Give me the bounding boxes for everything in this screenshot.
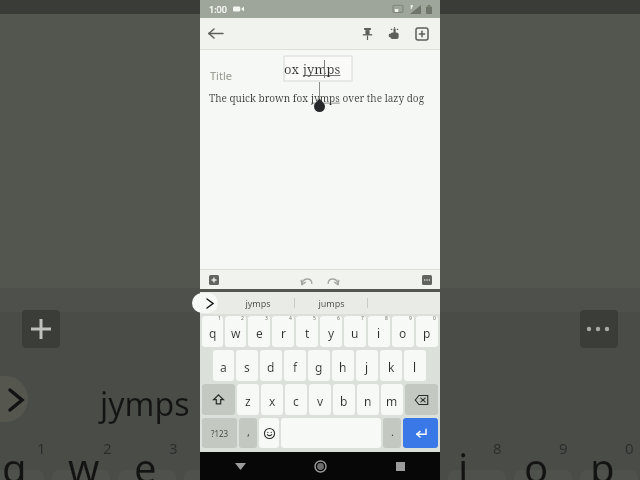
button[interactable]: r xyxy=(272,316,294,347)
button[interactable]: b xyxy=(333,384,355,415)
button[interactable]: Undo xyxy=(298,271,316,289)
button[interactable]: j xyxy=(356,350,378,381)
staticText: 7 xyxy=(361,316,364,322)
button[interactable]: l xyxy=(404,350,426,381)
button[interactable]: jumps xyxy=(295,292,367,314)
staticText: t xyxy=(305,325,310,341)
button[interactable]: More options xyxy=(420,273,433,286)
staticText: m xyxy=(386,393,398,409)
staticText: 8 xyxy=(493,438,502,458)
staticText: h xyxy=(339,359,347,375)
staticText: r xyxy=(281,325,286,341)
button[interactable]: z xyxy=(237,384,259,415)
staticText: ov xyxy=(341,56,352,81)
button[interactable]: Remind me xyxy=(381,20,408,47)
staticText: i xyxy=(458,440,469,480)
staticText: y xyxy=(328,325,335,341)
button[interactable]: x xyxy=(261,384,283,415)
staticText: jymps xyxy=(311,91,340,105)
staticText: . xyxy=(391,424,394,439)
staticText: 3 xyxy=(265,316,268,322)
button[interactable]: c xyxy=(285,384,307,415)
button[interactable]: t xyxy=(296,316,318,347)
staticText: i xyxy=(377,325,381,341)
button[interactable]: Add item xyxy=(207,273,220,286)
staticText: , xyxy=(247,424,250,439)
staticText: j xyxy=(365,359,369,375)
staticText: jymps xyxy=(100,382,190,426)
button[interactable]: Period xyxy=(383,418,401,448)
staticText: jymps xyxy=(303,60,341,78)
button[interactable]: y xyxy=(320,316,342,347)
staticText: f xyxy=(293,359,298,375)
button[interactable]: q xyxy=(202,316,223,347)
staticText: e xyxy=(256,325,263,341)
button[interactable]: k xyxy=(380,350,402,381)
button[interactable]: h xyxy=(332,350,354,381)
staticText: ?123 xyxy=(211,428,229,439)
staticText: l xyxy=(413,359,417,375)
button[interactable]: w xyxy=(225,316,246,347)
staticText: s xyxy=(244,359,250,375)
staticText: 1 xyxy=(37,438,46,458)
button[interactable]: Shift xyxy=(202,384,235,415)
button[interactable]: v xyxy=(309,384,331,415)
button[interactable]: m xyxy=(381,384,403,415)
staticText: d xyxy=(267,359,275,375)
button[interactable]: u xyxy=(344,316,366,347)
button[interactable]: Recent apps xyxy=(360,452,440,480)
button[interactable]: More suggestions xyxy=(192,293,218,313)
staticText: q xyxy=(209,325,217,341)
staticText: 0 xyxy=(625,438,634,458)
button[interactable]: Emoji xyxy=(259,418,279,448)
button[interactable]: f xyxy=(284,350,306,381)
staticText: 0 xyxy=(433,316,436,322)
staticText: 6 xyxy=(337,316,340,322)
staticText: o xyxy=(524,440,549,480)
button[interactable]: i xyxy=(368,316,390,347)
button[interactable]: Redo xyxy=(324,271,342,289)
button[interactable]: e xyxy=(248,316,270,347)
staticText: 1:00 xyxy=(209,3,227,15)
button[interactable]: Enter xyxy=(403,418,438,448)
staticText: c xyxy=(293,393,299,409)
staticText: n xyxy=(364,393,372,409)
staticText: b xyxy=(340,393,348,409)
button[interactable]: Symbols xyxy=(202,418,237,448)
button[interactable]: Back xyxy=(200,18,231,49)
staticText: k xyxy=(388,359,395,375)
button[interactable]: Comma xyxy=(239,418,257,448)
button[interactable]: Pin note xyxy=(354,20,381,47)
staticText: p xyxy=(423,325,431,341)
staticText: x xyxy=(269,393,276,409)
button[interactable]: Hide keyboard xyxy=(200,452,280,480)
staticText: 1 xyxy=(218,316,221,322)
staticText: 9 xyxy=(409,316,412,322)
staticText: ox xyxy=(284,60,303,78)
staticText: w xyxy=(68,440,100,480)
staticText: 2 xyxy=(241,316,244,322)
button[interactable]: p xyxy=(416,316,438,347)
button[interactable]: Home xyxy=(280,452,360,480)
staticText: a xyxy=(220,359,227,375)
button[interactable]: o xyxy=(392,316,414,347)
button[interactable]: n xyxy=(357,384,379,415)
staticText: 5 xyxy=(313,316,316,322)
button[interactable]: a xyxy=(213,350,234,381)
staticText: jymps xyxy=(245,297,271,309)
button[interactable]: g xyxy=(308,350,330,381)
button[interactable]: Backspace xyxy=(405,384,438,415)
staticText: o xyxy=(399,325,407,341)
button[interactable]: jymps xyxy=(222,292,294,314)
staticText: jumps xyxy=(318,297,345,309)
button[interactable]: d xyxy=(260,350,282,381)
staticText: q xyxy=(2,440,27,480)
staticText: 2 xyxy=(103,438,112,458)
staticText: 3 xyxy=(169,438,178,458)
staticText: 4 xyxy=(289,316,292,322)
button[interactable]: s xyxy=(236,350,258,381)
staticText: u xyxy=(351,325,359,341)
button[interactable]: Add xyxy=(408,20,435,47)
